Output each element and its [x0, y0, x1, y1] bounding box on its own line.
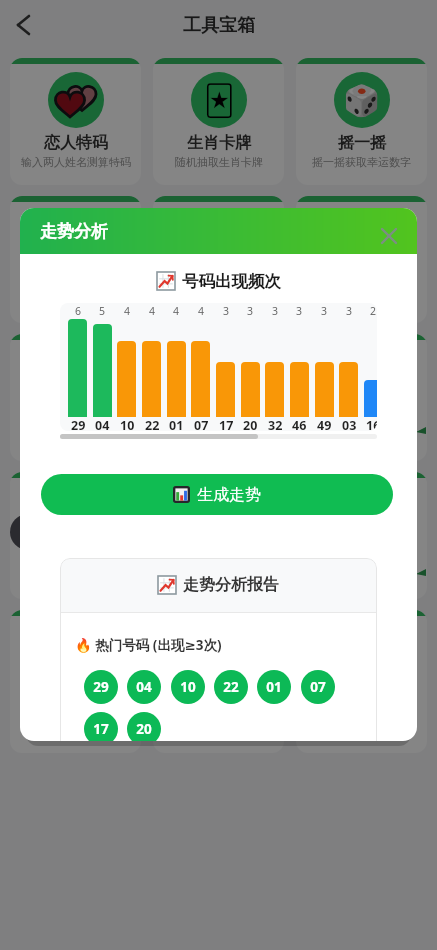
staticText: 生肖卡牌 — [187, 685, 251, 705]
staticText: 随机抽取生肖卡牌 — [175, 431, 263, 445]
staticText: 输入两人姓名测算特码 — [21, 569, 131, 583]
staticText: 22 — [145, 417, 160, 431]
staticText: 号码出现频次 — [182, 271, 281, 292]
staticText: 49 — [317, 417, 332, 431]
staticText: 摇一摇获取幸运数字 — [312, 569, 411, 583]
staticText: 🎲 — [343, 359, 381, 394]
staticText: 3 — [346, 304, 353, 318]
staticText: 04 — [136, 678, 152, 696]
staticText: 3 — [272, 304, 279, 318]
staticText: 🃏 — [204, 497, 235, 532]
staticText: 恋人特码 — [44, 409, 108, 429]
staticText: 07 — [194, 417, 209, 431]
staticText: 走势分析 — [40, 221, 108, 242]
staticText: 4 — [173, 304, 180, 318]
button[interactable] — [14, 13, 36, 37]
staticText: 32 — [268, 417, 283, 431]
staticText: 29 — [93, 678, 109, 696]
button[interactable]: 恋人特码 — [10, 334, 141, 461]
staticText: 20 — [136, 720, 152, 738]
button[interactable]: 🃏 — [153, 334, 284, 461]
staticText: 🃏 — [204, 221, 235, 256]
staticText: 4 — [198, 304, 205, 318]
staticText: 生肖卡牌 — [187, 133, 251, 153]
staticText: 工具宝箱 — [183, 14, 255, 37]
staticText: 🃏 — [204, 635, 235, 670]
staticText: 摇一摇获取幸运数字 — [312, 431, 411, 445]
staticText: 10 — [180, 678, 196, 696]
staticText: 🃏 — [204, 359, 235, 394]
staticText: 20 — [243, 417, 258, 431]
staticText: 3 — [223, 304, 230, 318]
staticText: 6 — [75, 304, 82, 318]
staticText: 生肖卡牌 — [187, 547, 251, 567]
staticText: 恋人特码 — [44, 133, 108, 153]
staticText: 03 — [342, 417, 357, 431]
staticText: 摇一摇获取幸运数字 — [312, 155, 411, 169]
button[interactable]: 🎲 — [296, 334, 427, 461]
button[interactable]: 恋人特码 — [10, 196, 141, 323]
staticText: 2 — [370, 304, 377, 318]
staticText: 46 — [292, 417, 307, 431]
staticText: 10 — [120, 417, 135, 431]
staticText: 生肖卡牌 — [187, 409, 251, 429]
button[interactable]: 恋人特码 — [10, 58, 141, 185]
staticText: 5 — [99, 304, 106, 318]
staticText: 🔥 热门号码 (出现≥3次) — [75, 636, 222, 653]
button[interactable]: 🃏 — [153, 472, 284, 599]
staticText: 29 — [71, 417, 86, 431]
staticText: 01 — [169, 417, 184, 431]
staticText: 生肖卡牌 — [187, 271, 251, 291]
staticText: 16 — [366, 417, 377, 431]
staticText: 17 — [93, 720, 109, 738]
staticText: 4 — [124, 304, 131, 318]
staticText: 输入两人姓名测算特码 — [21, 707, 131, 721]
staticText: 🎲 — [343, 497, 381, 532]
staticText: 22 — [223, 678, 239, 696]
staticText: 07 — [310, 678, 326, 696]
staticText: 恋人特码 — [44, 685, 108, 705]
button[interactable]: 🃏 — [153, 58, 284, 185]
button[interactable]: 🎲 — [296, 472, 427, 599]
staticText: 随机抽取生肖卡牌 — [175, 155, 263, 169]
button[interactable]: 🎲 — [296, 196, 427, 323]
staticText: 随机抽取生肖卡牌 — [175, 569, 263, 583]
staticText: 摇一摇 — [338, 685, 386, 705]
staticText: 3 — [296, 304, 303, 318]
staticText: 摇一摇 — [338, 547, 386, 567]
button[interactable]: 🎲 — [296, 58, 427, 185]
button[interactable]: 🎲 — [296, 610, 427, 753]
staticText: 3 — [247, 304, 254, 318]
staticText: 摇一摇 — [338, 133, 386, 153]
staticText: 输入两人姓名测算特码 — [21, 155, 131, 169]
staticText: 🃏 — [204, 83, 235, 118]
staticText: 输入两人姓名测算特码 — [21, 431, 131, 445]
button[interactable] — [381, 228, 397, 244]
staticText: 04 — [95, 417, 110, 431]
staticText: 随机抽取生肖卡牌 — [175, 293, 263, 307]
staticText: 4 — [149, 304, 156, 318]
staticText: 17 — [219, 417, 234, 431]
staticText: 3 — [321, 304, 328, 318]
button[interactable]: 恋人特码 — [10, 472, 141, 599]
button[interactable]: 生成走势 — [41, 474, 393, 515]
button[interactable]: 🃏 — [153, 610, 284, 753]
staticText: 生成走势 — [197, 485, 261, 505]
button[interactable]: 🃏 — [153, 196, 284, 323]
staticText: 01 — [266, 678, 282, 696]
button[interactable]: 恋人特码 — [10, 610, 141, 753]
staticText: 恋人特码 — [44, 547, 108, 567]
staticText: 🎲 — [343, 221, 381, 256]
staticText: 🎲 — [343, 635, 381, 670]
staticText: 摇一摇 — [338, 409, 386, 429]
staticText: 走势分析报告 — [183, 575, 279, 595]
staticText: 🎲 — [343, 83, 381, 118]
